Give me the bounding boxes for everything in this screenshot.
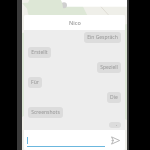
button[interactable]: Screenshots <box>28 107 63 118</box>
staticText: Nico <box>69 19 81 26</box>
button[interactable]: Für <box>28 77 42 88</box>
staticText: Screenshots <box>31 109 60 116</box>
button[interactable]: Erstellt <box>28 47 51 58</box>
button[interactable]: »| <box>109 122 121 128</box>
staticText: Ein Gespräch <box>87 34 118 41</box>
button[interactable]: Send <box>108 133 122 147</box>
staticText: Speziell <box>100 64 118 71</box>
button[interactable] <box>27 133 105 147</box>
button[interactable]: Speziell <box>97 62 121 73</box>
button[interactable]: Ein Gespräch <box>84 32 121 43</box>
button[interactable]: Nico <box>24 15 125 30</box>
staticText: Für <box>31 79 39 86</box>
staticText: Die <box>110 94 118 101</box>
button[interactable]: Die <box>107 92 121 103</box>
staticText: Erstellt <box>31 49 48 56</box>
staticText: »| <box>112 124 118 126</box>
